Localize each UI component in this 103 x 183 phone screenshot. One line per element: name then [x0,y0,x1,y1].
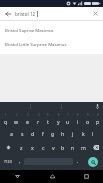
button[interactable]: 8 [73,112,83,126]
staticText: u [66,118,70,125]
button[interactable]: Search [88,157,98,167]
staticText: z [20,144,23,151]
button[interactable]: Back [0,170,35,183]
button[interactable]: b [58,140,68,154]
staticText: f [42,130,44,137]
staticText: ?123 [4,159,12,164]
button[interactable]: 5 [43,112,53,126]
button[interactable]: j [68,126,78,140]
staticText: e [26,118,29,125]
button[interactable]: Recent apps [69,170,103,183]
staticText: a [10,130,13,137]
button[interactable]: h [58,126,68,140]
button[interactable]: , [15,154,24,169]
staticText: 5 [47,113,49,117]
staticText: n [71,144,75,151]
staticText: s [21,130,24,137]
staticText: 1 [5,113,7,117]
button[interactable]: Shift [0,140,16,154]
staticText: h [61,130,65,137]
button[interactable]: l [88,126,98,140]
staticText: y [57,118,60,125]
button[interactable]: s [17,126,28,140]
button[interactable]: Clear search [91,9,100,18]
staticText: 2 [16,113,18,117]
staticText: g [51,130,55,137]
staticText: o [86,118,90,125]
staticText: m [81,144,86,151]
staticText: 4 [38,113,40,117]
staticText: q [4,118,8,125]
button[interactable]: Backspace [88,140,103,154]
staticText: t [47,118,49,125]
staticText: . [77,158,79,165]
button[interactable]: Home [35,170,69,183]
button[interactable]: k [78,126,88,140]
staticText: d [31,130,35,137]
staticText: b [61,144,65,151]
staticText: Bristol Little Surprise Maximus [5,41,67,47]
button[interactable]: n [68,140,78,154]
staticText: l [92,130,94,137]
button[interactable]: 9 [83,112,93,126]
button[interactable]: c [38,140,48,154]
staticText: Bristol Suprise Maximus [5,27,54,33]
button[interactable]: 2 [11,112,22,126]
button[interactable]: ?123 [0,154,15,169]
button[interactable]: Voice input [92,102,103,111]
button[interactable]: 4 [33,112,43,126]
staticText: v [52,144,55,151]
staticText: bristol 12 [15,11,36,17]
button[interactable]: m [78,140,88,154]
staticText: c [42,144,45,151]
button[interactable]: x [27,140,38,154]
staticText: 6 [58,113,60,117]
button[interactable]: 7 [63,112,73,126]
button[interactable]: 0 [93,112,103,126]
button[interactable]: 1 [0,112,11,126]
button[interactable]: Back [3,9,12,18]
staticText: 7 [67,113,69,117]
button[interactable]: Bristol Suprise Maximus [0,23,103,37]
staticText: x [31,144,34,151]
staticText: 3 [27,113,29,117]
button[interactable]: Bristol Little Surprise Maximus [0,37,103,51]
button[interactable]: Back [0,7,103,20]
button[interactable]: z [16,140,27,154]
staticText: w [14,118,19,125]
staticText: 9 [87,113,89,117]
staticText: 0 [97,113,99,117]
staticText: , [19,158,21,165]
staticText: i [77,118,79,125]
button[interactable]: 6 [53,112,63,126]
staticText: 8 [77,113,79,117]
button[interactable]: g [48,126,58,140]
staticText: r [37,118,40,125]
button[interactable]: f [38,126,48,140]
button[interactable]: a [6,126,17,140]
button[interactable]: . [73,154,82,169]
staticText: p [96,118,100,125]
button[interactable]: 3 [22,112,33,126]
staticText: k [82,130,85,137]
button[interactable]: v [48,140,58,154]
staticText: j [72,130,74,137]
button[interactable]: d [28,126,38,140]
